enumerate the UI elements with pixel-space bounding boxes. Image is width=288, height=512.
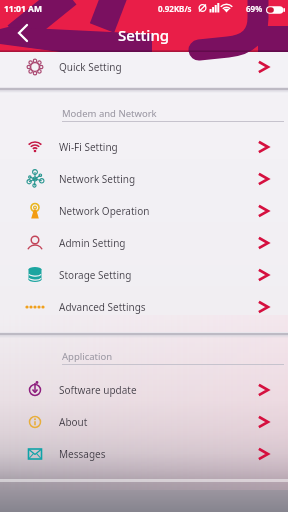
staticText: Advanced Settings	[59, 300, 146, 314]
staticText: Admin Setting	[59, 236, 126, 250]
staticText: Application	[62, 350, 113, 363]
staticText: 11:01 AM	[4, 3, 42, 15]
button[interactable]: Quick Setting	[0, 52, 288, 82]
button[interactable]: Network Setting	[0, 163, 288, 195]
button[interactable]: Admin Setting	[0, 227, 288, 259]
staticText: Network Operation	[59, 204, 150, 218]
staticText: Setting	[118, 25, 170, 45]
staticText: Storage Setting	[59, 268, 132, 282]
staticText: 69%	[246, 3, 263, 14]
staticText: Modem and Network	[62, 107, 157, 120]
staticText: Quick Setting	[59, 60, 122, 74]
button[interactable]	[10, 22, 36, 46]
button[interactable]: Storage Setting	[0, 259, 288, 291]
staticText: 0.92KB/s	[158, 3, 192, 14]
staticText: Wi-Fi Setting	[59, 140, 118, 154]
staticText: Network Setting	[59, 172, 136, 186]
button[interactable]: Advanced Settings	[0, 291, 288, 323]
staticText: Software update	[59, 383, 137, 397]
button[interactable]: Software update	[0, 374, 288, 406]
button[interactable]: About	[0, 406, 288, 438]
button[interactable]: Messages	[0, 438, 288, 470]
staticText: Messages	[59, 447, 106, 461]
button[interactable]: Wi-Fi Setting	[0, 131, 288, 163]
staticText: About	[59, 415, 88, 429]
button[interactable]: Network Operation	[0, 195, 288, 227]
